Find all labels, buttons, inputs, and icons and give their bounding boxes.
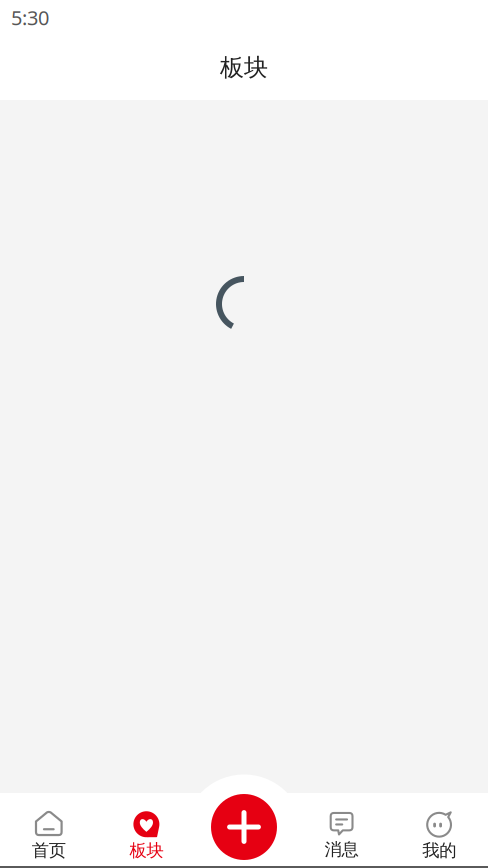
- button[interactable]: 首页: [0, 790, 98, 868]
- staticText: 消息: [325, 839, 359, 860]
- button[interactable]: 消息: [293, 791, 390, 868]
- staticText: 板块: [220, 53, 268, 82]
- staticText: 首页: [32, 840, 66, 861]
- staticText: 5:30: [11, 4, 49, 31]
- button[interactable]: 我的: [390, 790, 488, 868]
- button[interactable]: 发布: [211, 794, 277, 860]
- staticText: 我的: [422, 840, 456, 861]
- staticText: 板块: [129, 840, 163, 861]
- button[interactable]: 板块: [98, 790, 195, 868]
